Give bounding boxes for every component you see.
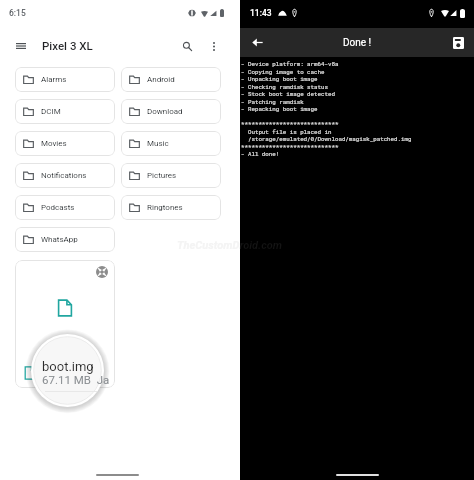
staticText: Alarms — [41, 75, 67, 84]
button[interactable]: Ringtones — [121, 195, 221, 220]
button[interactable]: Back — [247, 28, 267, 57]
button[interactable]: Select item — [15, 260, 115, 388]
staticText: Android — [147, 75, 175, 84]
staticText: WhatsApp — [41, 235, 78, 244]
button[interactable]: Save — [448, 33, 468, 53]
staticText: TheCustomDroid.com — [177, 239, 240, 252]
staticText: - Patching ramdisk — [241, 98, 304, 106]
staticText: DCIM — [41, 107, 61, 116]
staticText: 6:15 — [9, 8, 26, 18]
button[interactable]: Download — [121, 99, 221, 124]
button[interactable]: More options — [204, 36, 224, 56]
staticText: - Checking ramdisk status — [241, 83, 328, 91]
button[interactable]: Select item — [91, 261, 112, 282]
staticText: - Repacking boot image — [241, 105, 318, 113]
staticText: - Stock boot image detected — [241, 90, 335, 98]
button[interactable]: Alarms — [15, 67, 115, 92]
staticText: - Device platform: arm64-v8a — [241, 60, 339, 68]
button[interactable]: Notifications — [15, 163, 115, 188]
staticText: /storage/emulated/0/Download/magisk_patc… — [241, 135, 412, 143]
button[interactable]: WhatsApp — [15, 227, 115, 252]
staticText: Output file is placed in — [241, 128, 332, 136]
staticText: Movies — [41, 139, 67, 148]
staticText: Pictures — [147, 171, 177, 180]
button[interactable]: Pictures — [121, 163, 221, 188]
staticText: Music — [147, 139, 169, 148]
button[interactable]: Navigation menu — [11, 36, 31, 56]
staticText: Podcasts — [41, 203, 75, 212]
button[interactable]: Podcasts — [15, 195, 115, 220]
button[interactable]: Movies — [15, 131, 115, 156]
staticText: - Copying image to cache — [241, 68, 325, 76]
staticText: **************************** — [241, 120, 339, 128]
staticText: - Unpacking boot image — [241, 75, 318, 83]
staticText: Pixel 3 XL — [42, 39, 93, 52]
staticText: 67.11 MB Ja — [42, 373, 110, 386]
staticText: 11:43 — [250, 8, 272, 18]
staticText: Download — [147, 107, 183, 116]
button[interactable]: Android — [121, 67, 221, 92]
staticText: TheCustomDroid.com — [240, 239, 282, 252]
staticText: boot.img — [42, 359, 94, 374]
staticText: Done ! — [343, 37, 372, 49]
staticText: - All done! — [241, 150, 280, 158]
button[interactable]: Music — [121, 131, 221, 156]
button[interactable]: Search — [177, 36, 197, 56]
button[interactable]: DCIM — [15, 99, 115, 124]
staticText: **************************** — [241, 143, 339, 151]
staticText: Ringtones — [147, 203, 183, 212]
staticText: Notifications — [41, 171, 87, 180]
